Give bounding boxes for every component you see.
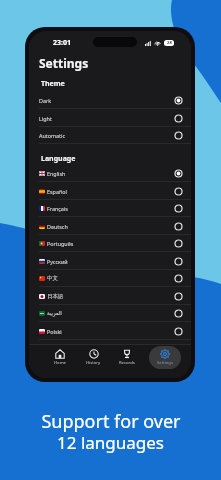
button[interactable]: English bbox=[29, 164, 191, 182]
button[interactable]: Records bbox=[111, 346, 143, 369]
staticText: Records bbox=[119, 360, 135, 366]
button[interactable]: 中文 bbox=[29, 269, 191, 287]
staticText: Русский bbox=[47, 258, 68, 265]
button[interactable]: العربية bbox=[29, 304, 191, 322]
staticText: English bbox=[47, 170, 66, 177]
staticText: Home bbox=[54, 360, 66, 366]
staticText: 12 languages bbox=[57, 431, 164, 454]
button[interactable]: Português bbox=[29, 234, 191, 252]
staticText: Support for over bbox=[41, 409, 181, 434]
staticText: Light bbox=[39, 115, 52, 122]
button[interactable]: Русский bbox=[29, 252, 191, 270]
button[interactable]: Deutsch bbox=[29, 217, 191, 235]
button[interactable]: History bbox=[77, 346, 109, 369]
staticText: Português bbox=[47, 240, 74, 247]
staticText: Français bbox=[47, 205, 68, 212]
button[interactable]: 日本語 bbox=[29, 287, 191, 305]
staticText: Settings bbox=[39, 55, 89, 71]
button[interactable]: Español bbox=[29, 182, 191, 200]
staticText: 中文 bbox=[47, 275, 58, 282]
staticText: History bbox=[86, 360, 101, 366]
button[interactable]: Home bbox=[44, 346, 76, 369]
button[interactable]: Polski bbox=[29, 322, 191, 340]
staticText: 日本語 bbox=[47, 293, 64, 300]
staticText: Dark bbox=[39, 97, 52, 104]
staticText: Deutsch bbox=[47, 223, 68, 230]
staticText: Automatic bbox=[39, 132, 65, 139]
button[interactable]: Automatic bbox=[29, 126, 191, 144]
staticText: العربية bbox=[47, 310, 62, 316]
staticText: 28 bbox=[167, 40, 172, 46]
staticText: Language bbox=[41, 154, 76, 164]
button[interactable]: Light bbox=[29, 109, 191, 127]
staticText: Polski bbox=[47, 328, 62, 335]
staticText: Español bbox=[47, 188, 67, 195]
button[interactable]: Settings bbox=[149, 346, 181, 369]
button[interactable]: Dark bbox=[29, 91, 191, 109]
staticText: 23:01 bbox=[53, 38, 71, 48]
staticText: Theme bbox=[41, 79, 65, 89]
staticText: Settings bbox=[157, 360, 173, 366]
button[interactable]: Français bbox=[29, 199, 191, 217]
